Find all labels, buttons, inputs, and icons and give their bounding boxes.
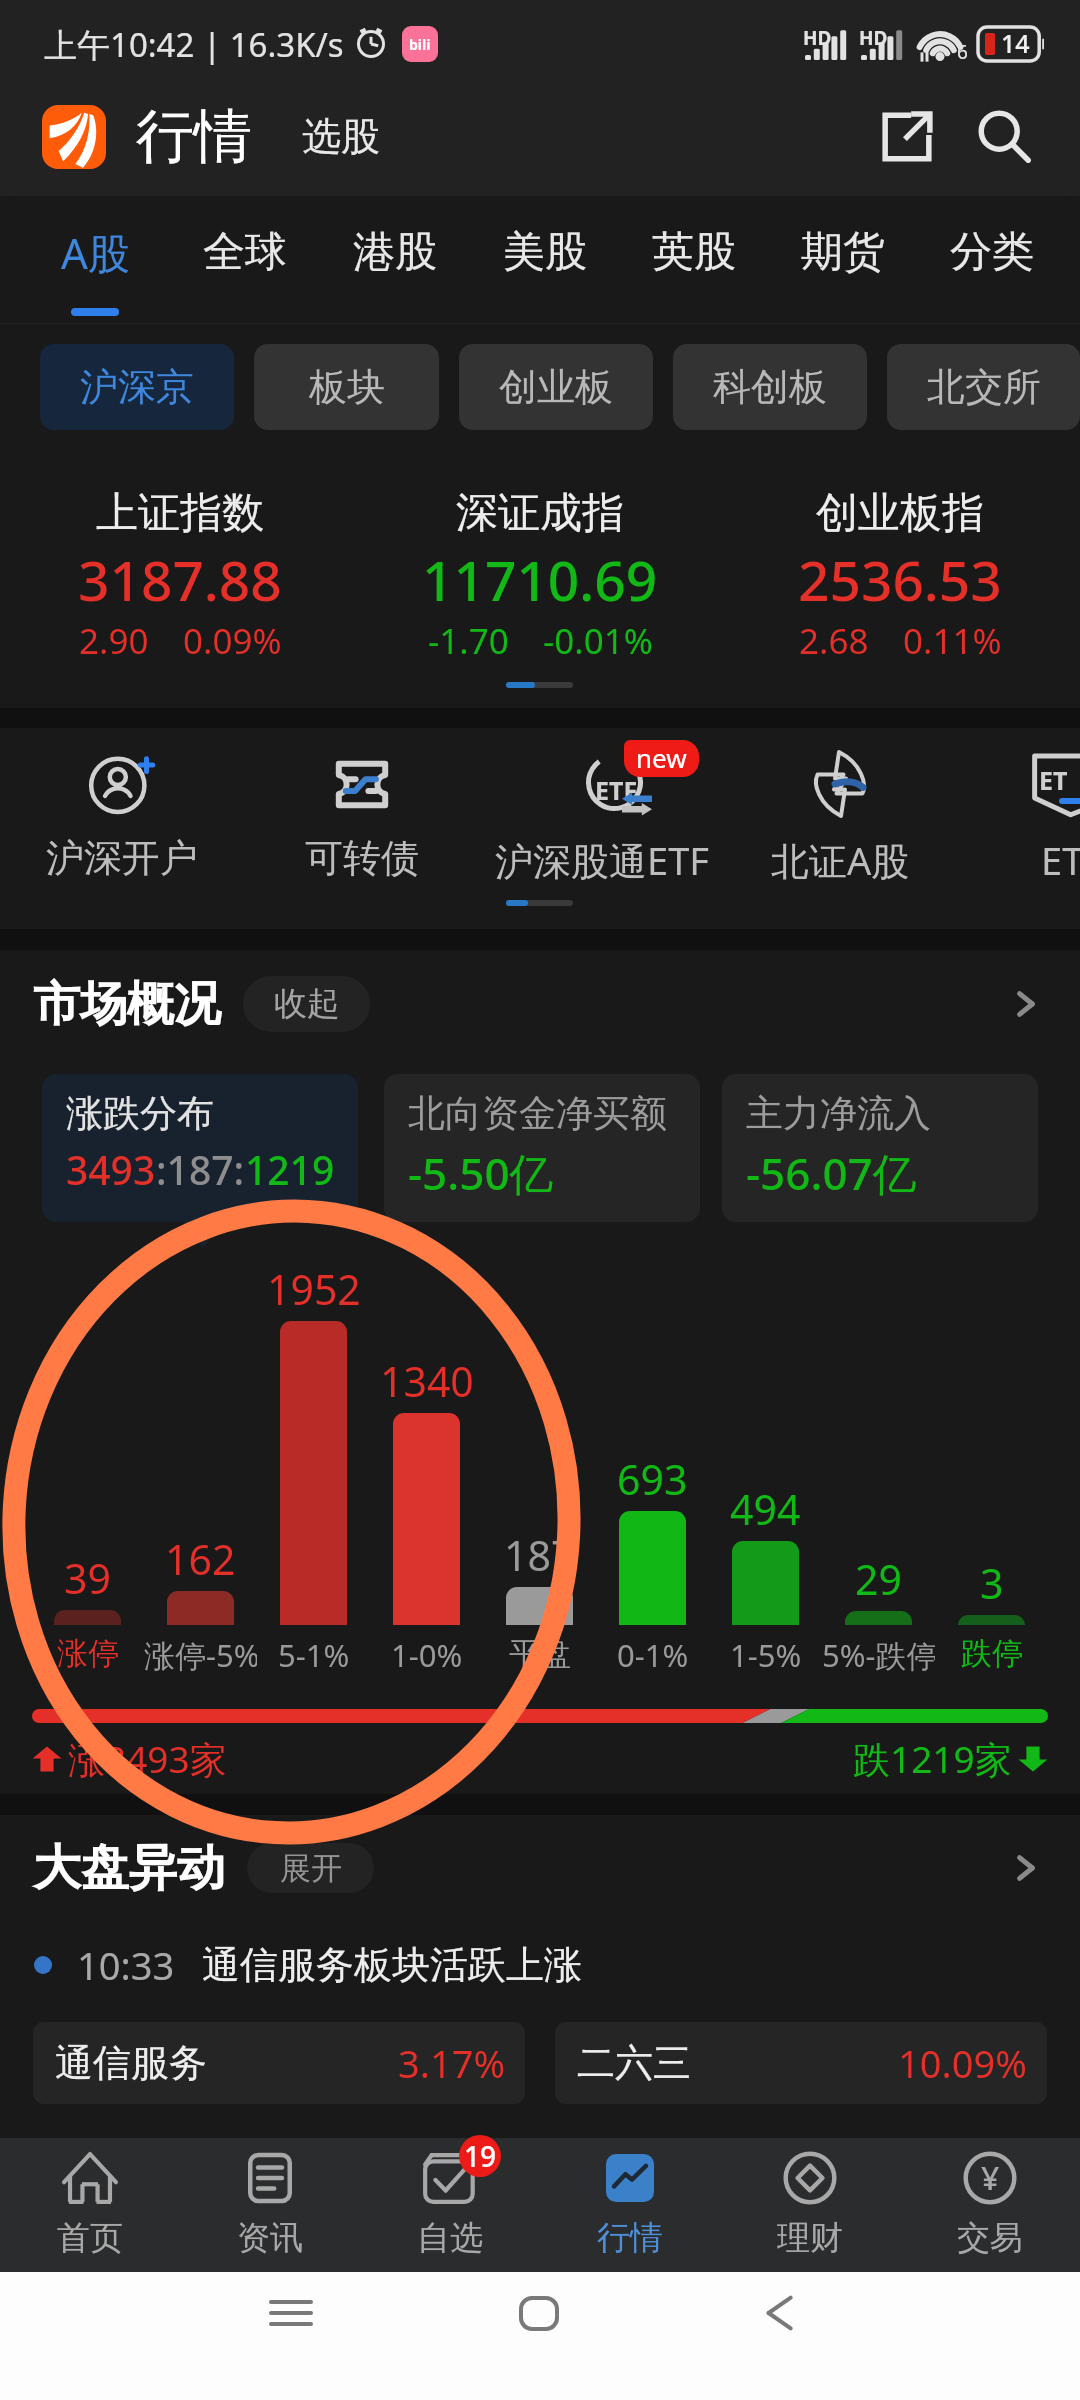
staticText: 19 — [464, 2137, 497, 2175]
staticText: 板块 — [309, 363, 385, 411]
button[interactable]: 沪深股通ETF — [566, 740, 716, 824]
staticText: 涨3493家 — [68, 1733, 227, 1784]
button[interactable]: 理财 — [720, 2138, 900, 2272]
staticText: 沪深股通ETF — [495, 834, 709, 886]
button[interactable]: 展开 — [247, 1843, 374, 1893]
button[interactable]: 收起 — [243, 976, 370, 1032]
staticText: 涨停-5% — [144, 1634, 257, 1676]
button[interactable]: 科创板 — [673, 344, 867, 430]
staticText: 沪深开户 — [46, 834, 198, 882]
button[interactable]: Back — [719, 2285, 839, 2341]
button[interactable]: More moves — [1006, 1848, 1046, 1888]
button[interactable]: 涨跌分布 — [42, 1074, 358, 1222]
staticText: 全球 — [203, 226, 287, 279]
staticText: ET — [1041, 834, 1080, 886]
staticText: 1-5% — [730, 1634, 802, 1676]
button[interactable]: 资讯 — [180, 2138, 360, 2272]
button[interactable]: Recents — [231, 2285, 351, 2341]
staticText: 涨停 — [57, 1634, 119, 1673]
button[interactable]: Home — [479, 2285, 599, 2341]
staticText: HD — [859, 25, 888, 51]
button[interactable]: 沪深开户 — [86, 748, 158, 820]
button[interactable]: 期货 — [768, 196, 917, 324]
staticText: 跌停 — [961, 1634, 1023, 1673]
button[interactable]: 行情 — [540, 2138, 720, 2272]
button[interactable]: Search — [970, 102, 1040, 172]
staticText: 1952 — [267, 1261, 361, 1317]
button[interactable]: 沪深京 — [40, 344, 234, 430]
staticText: 1-0% — [391, 1634, 463, 1676]
staticText: 3.17% — [398, 2037, 505, 2089]
button[interactable]: 分类 — [917, 196, 1066, 324]
staticText: 涨跌分布 — [66, 1090, 214, 1137]
staticText: 5-1% — [278, 1634, 350, 1676]
button[interactable]: ETF — [1026, 748, 1080, 820]
button[interactable]: 可转债 — [326, 748, 398, 820]
button[interactable]: 创业板指 — [720, 487, 1080, 665]
staticText: 北交所 — [927, 363, 1041, 411]
staticText: -5.50亿 — [408, 1143, 554, 1203]
button[interactable]: 北向资金净买额 — [384, 1074, 700, 1222]
staticText: ET — [1039, 763, 1068, 797]
staticText: 3 — [980, 1555, 1004, 1611]
staticText: 行情 — [597, 2217, 663, 2259]
button[interactable]: 北证A股 — [804, 748, 876, 820]
staticText: bili — [409, 35, 431, 54]
staticText: 市场概况 — [33, 975, 221, 1034]
button[interactable]: 市场概况 — [33, 950, 1046, 1058]
button[interactable]: App logo — [42, 105, 106, 169]
staticText: 10.09% — [898, 2037, 1027, 2089]
staticText: 期货 — [801, 226, 885, 279]
button[interactable]: 上证指数 — [0, 487, 360, 665]
button[interactable]: 深证成指 — [360, 487, 720, 665]
button[interactable]: ¥ — [900, 2138, 1080, 2272]
button[interactable]: 大盘异动 — [33, 1815, 1046, 1920]
staticText: 3187.88 — [78, 542, 282, 617]
staticText: new — [636, 740, 687, 775]
staticText: 494 — [730, 1481, 801, 1537]
button[interactable]: 10:33 — [34, 1920, 1080, 2010]
staticText: 交易 — [957, 2217, 1023, 2259]
staticText: 1340 — [380, 1353, 474, 1409]
staticText: 深证成指 — [456, 487, 624, 540]
button[interactable]: 行情 — [136, 100, 252, 173]
staticText: -1.70 — [428, 617, 509, 665]
button[interactable]: 英股 — [619, 196, 768, 324]
staticText: 0.09% — [183, 617, 282, 665]
button[interactable]: 全球 — [170, 196, 320, 324]
button[interactable]: Share — [872, 102, 942, 172]
staticText: 科创板 — [713, 363, 827, 411]
button[interactable]: 选股 — [302, 112, 380, 161]
staticText: 首页 — [57, 2217, 123, 2259]
staticText: 29 — [855, 1551, 902, 1607]
button[interactable]: 19 — [360, 2138, 540, 2272]
staticText: 平盘 — [509, 1634, 571, 1673]
staticText: 6 — [957, 39, 968, 65]
button[interactable]: 首页 — [0, 2138, 180, 2272]
button[interactable]: 主力净流入 — [722, 1074, 1038, 1222]
staticText: 北向资金净买额 — [408, 1090, 667, 1137]
staticText: 分类 — [950, 226, 1034, 279]
button[interactable]: A股 — [20, 196, 170, 324]
staticText: 创业板 — [499, 363, 613, 411]
staticText: 展开 — [280, 1849, 342, 1888]
button[interactable]: 美股 — [470, 196, 619, 324]
staticText: 美股 — [503, 226, 587, 279]
button[interactable]: 北交所 — [887, 344, 1080, 430]
button[interactable]: 港股 — [320, 196, 470, 324]
button[interactable]: 创业板 — [459, 344, 653, 430]
staticText: ETF — [595, 773, 638, 807]
staticText: 理财 — [777, 2217, 843, 2259]
staticText: 上证指数 — [96, 487, 264, 540]
button[interactable]: 通信服务 — [33, 2022, 525, 2104]
staticText: 沪深京 — [80, 363, 194, 411]
staticText: 2.68 — [799, 617, 869, 665]
staticText: 187 — [504, 1527, 575, 1583]
staticText: 5%-跌停 — [822, 1634, 935, 1676]
button[interactable]: More — [1006, 984, 1046, 1024]
button[interactable]: 二六三 — [555, 2022, 1047, 2104]
staticText: 通信服务板块活跃上涨 — [202, 1941, 582, 1989]
button[interactable]: 板块 — [254, 344, 439, 430]
staticText: 0-1% — [617, 1634, 689, 1676]
staticText: 2.90 — [79, 617, 149, 665]
